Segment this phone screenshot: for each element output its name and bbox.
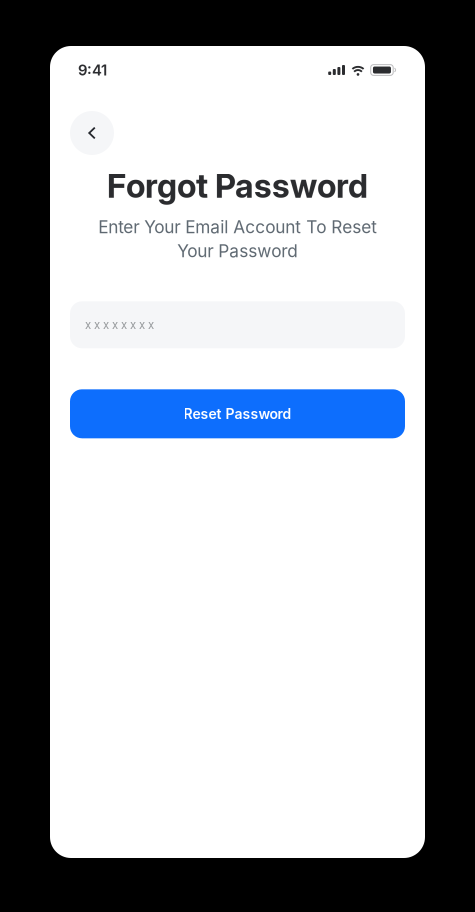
staticText: x x x x x x x x <box>85 318 154 332</box>
button[interactable]: Reset Password <box>70 389 405 438</box>
staticText: Enter Your Email Account To Reset Your P… <box>98 217 377 261</box>
staticText: Forgot Password <box>107 166 368 206</box>
button[interactable]: Back <box>70 111 114 155</box>
staticText: 9:41 <box>78 61 107 79</box>
staticText: Reset Password <box>183 405 291 422</box>
